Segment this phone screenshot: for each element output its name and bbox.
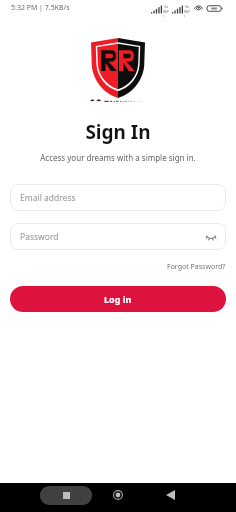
- staticText: Access your dreams with a simple sign in…: [0, 152, 236, 163]
- staticText: Log in: [104, 293, 132, 305]
- staticText: WiFi: [184, 9, 191, 17]
- staticText: Forgot Password?: [167, 262, 226, 272]
- button[interactable]: Show password: [206, 232, 216, 242]
- staticText: 5:32 PM | 7.5KB/s: [11, 3, 70, 13]
- button[interactable]: Back: [160, 485, 180, 505]
- staticText: Sign In: [0, 119, 236, 145]
- staticText: WiFi: [163, 9, 170, 17]
- staticText: Vo: [164, 4, 169, 9]
- staticText: Password: [20, 231, 59, 243]
- staticText: Vo: [185, 4, 190, 9]
- button[interactable]: Email address: [10, 184, 226, 211]
- button[interactable]: Password: [10, 223, 226, 250]
- button[interactable]: Recent apps: [40, 486, 92, 505]
- staticText: Email address: [20, 192, 76, 204]
- button[interactable]: Forgot Password?: [165, 261, 228, 273]
- button[interactable]: Home: [108, 485, 128, 505]
- button[interactable]: Log in: [10, 286, 226, 312]
